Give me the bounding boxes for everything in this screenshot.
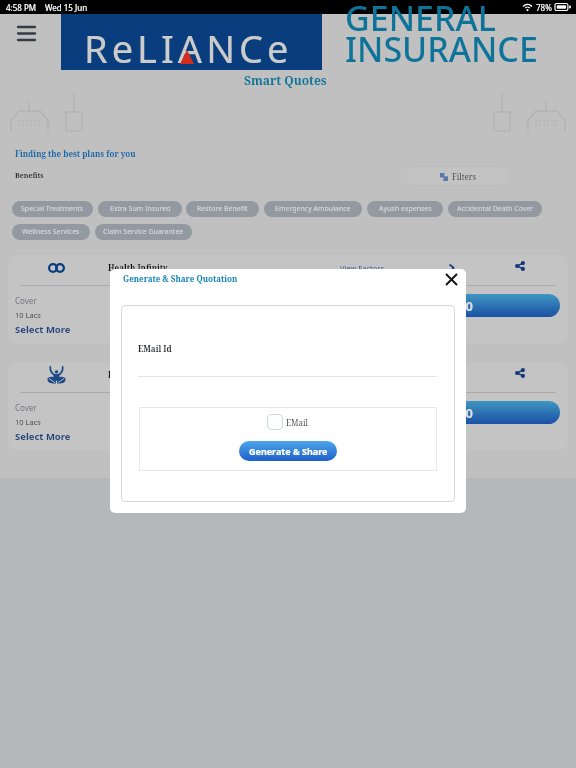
staticText: Benefits (15, 171, 44, 181)
button[interactable]: Emergency Ambulance (264, 201, 362, 217)
staticText: Health Infinity (108, 369, 168, 380)
staticText: 7849.0 (432, 404, 473, 422)
button[interactable]: Restore Benefit (186, 201, 259, 217)
staticText: Finding the best plans for you (15, 148, 136, 159)
staticText: Generate & Share (249, 445, 328, 457)
button[interactable]: View Factors (338, 366, 458, 384)
button[interactable]: Select More (15, 430, 71, 443)
staticText: Health Infinity (108, 262, 168, 273)
button[interactable]: Ayush expenses (367, 201, 443, 217)
staticText: Wed 15 Jun (45, 2, 88, 13)
staticText: Cover (15, 402, 37, 413)
button[interactable]: Generate & Share (239, 441, 337, 461)
button[interactable]: Claim Service Guarantee (95, 224, 192, 240)
button[interactable]: Close (431, 269, 466, 289)
button[interactable]: Special Treatments (12, 201, 93, 217)
staticText: Ayush expenses (379, 204, 432, 214)
staticText: Cover (15, 295, 37, 306)
button[interactable]: Share (506, 362, 534, 387)
staticText: 10 Lacs (15, 417, 41, 427)
button[interactable]: EMail (267, 414, 309, 430)
staticText: 10 Lacs (15, 310, 41, 320)
staticText: INSURANCE (345, 26, 538, 72)
staticText: ReLIANCe (84, 22, 293, 74)
staticText: 5970.0 (432, 297, 473, 315)
button[interactable]: Filters (404, 166, 512, 186)
button[interactable]: Wellness Services (12, 224, 90, 240)
staticText: Extra Sum Insured (110, 204, 171, 214)
staticText: Restore Benefit (197, 204, 248, 214)
staticText: View Factors (340, 370, 384, 380)
button[interactable]: 7849.0 (344, 401, 560, 424)
staticText: EMail (286, 417, 309, 428)
staticText: Claim Service Guarantee (103, 227, 184, 237)
button[interactable]: Share (506, 255, 534, 280)
staticText: Wellness Services (22, 227, 80, 237)
staticText: Generate & Share Quotation (123, 273, 238, 284)
staticText: 78% (536, 2, 552, 13)
button[interactable]: Menu (8, 18, 44, 48)
staticText: Accidental Death Cover (457, 204, 534, 214)
staticText: Emergency Ambulance (275, 204, 351, 214)
button[interactable]: Health Infinity (8, 255, 568, 343)
button[interactable]: Extra Sum Insured (98, 201, 182, 217)
button[interactable]: Accidental Death Cover (448, 201, 542, 217)
button[interactable]: Health Infinity (8, 362, 568, 450)
button[interactable]: View Factors (338, 259, 458, 277)
staticText: EMail Id (138, 343, 172, 354)
staticText: View Factors (340, 263, 384, 273)
staticText: Select More (15, 430, 71, 443)
button[interactable]: Select More (15, 323, 71, 336)
staticText: GENERAL (345, 0, 496, 41)
staticText: Filters (452, 171, 477, 182)
button[interactable]: 5970.0 (344, 294, 560, 317)
staticText: Select More (15, 323, 71, 336)
staticText: Special Treatments (21, 204, 84, 214)
staticText: 4:58 PM (6, 2, 37, 13)
staticText: Smart Quotes (244, 72, 327, 88)
